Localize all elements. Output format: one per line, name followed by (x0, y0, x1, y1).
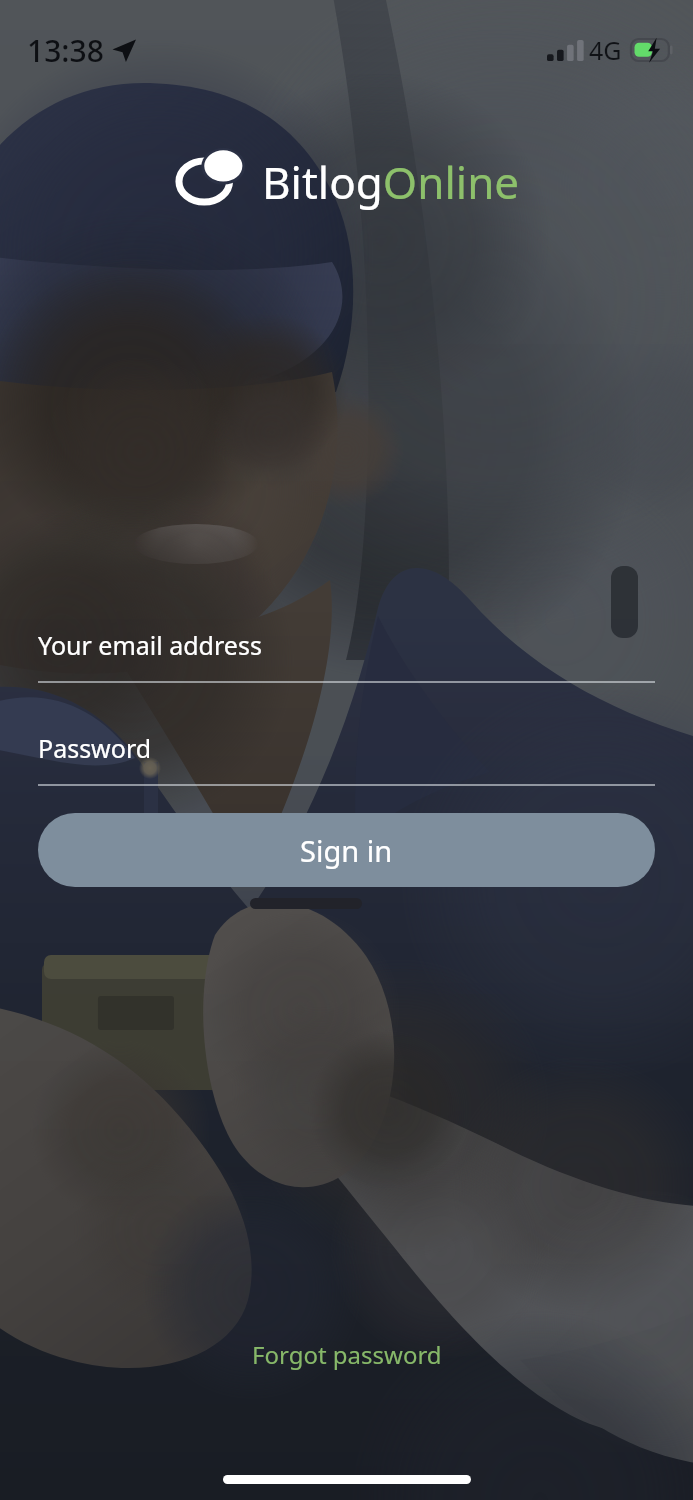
staticText: BitlogOnline (262, 152, 520, 212)
staticText: Sign in (300, 831, 393, 870)
staticText: Password (38, 731, 152, 765)
button[interactable]: Forgot password (232, 1330, 462, 1379)
staticText: 4G (589, 33, 622, 67)
staticText: Your email address (38, 628, 262, 662)
staticText: 13:38 (27, 30, 104, 71)
button[interactable]: Sign in (38, 813, 655, 887)
staticText: Forgot password (252, 1338, 442, 1371)
button[interactable]: Password (38, 731, 655, 786)
button[interactable]: Your email address (38, 628, 655, 683)
